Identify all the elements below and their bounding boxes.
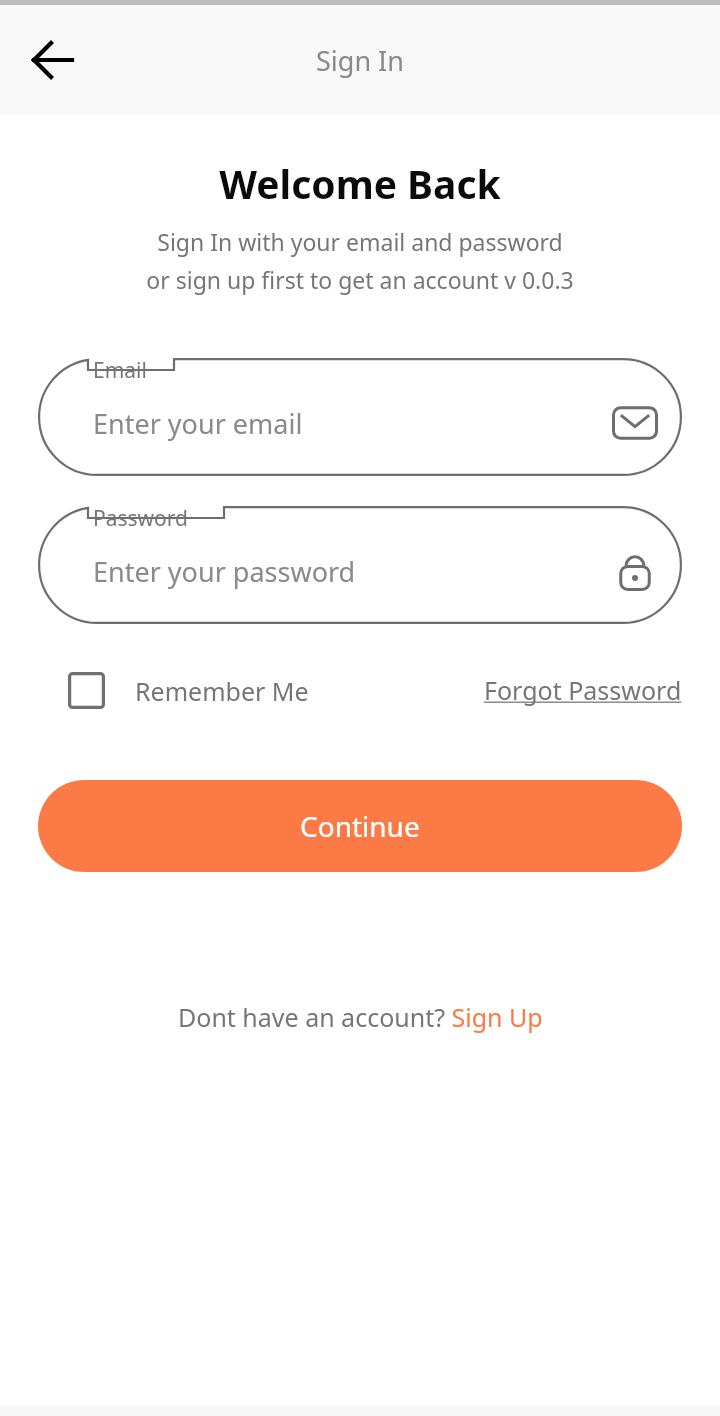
staticText: Welcome Back [0,157,720,210]
staticText: Forgot Password [484,673,682,707]
staticText: Remember Me [135,674,309,708]
other: Email [612,400,658,446]
button[interactable]: Email [38,358,682,476]
staticText: Continue [300,807,420,845]
staticText: Email [93,356,147,385]
other: Password [612,548,658,594]
staticText: Sign In with your email and password or … [0,226,720,296]
button[interactable]: Password [38,506,682,624]
button[interactable]: Forgot Password [484,673,682,707]
button[interactable]: Back [22,26,90,94]
staticText: Sign In [316,42,404,79]
button[interactable]: Remember Me [38,672,317,709]
staticText: Enter your email [93,405,303,442]
staticText: Enter your password [93,553,356,590]
button[interactable]: Dont have an account? Sign Up [178,1000,543,1034]
staticText: Dont have an account? Sign Up [178,1000,543,1034]
staticText: Password [93,504,188,533]
button[interactable]: Continue [38,780,682,872]
